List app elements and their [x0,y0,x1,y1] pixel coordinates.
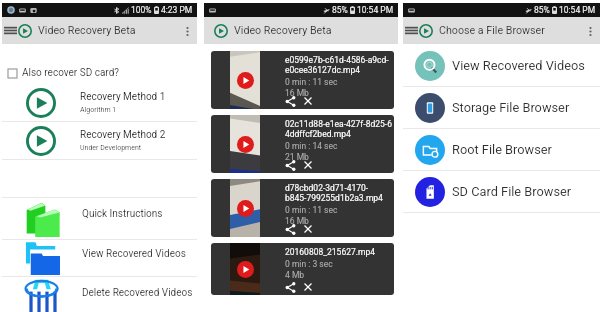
staticText: SD Card File Browser [452,184,572,199]
button[interactable]: Delete [302,95,314,107]
button[interactable]: Delete [302,223,314,235]
button[interactable]: Share [284,95,296,107]
staticText: Delete Recovered Videos [82,287,193,299]
staticText: Video Recovery Beta [234,24,332,37]
staticText: Also recover SD card? [22,67,120,79]
staticText: 4 Mb [285,270,305,280]
staticText: 0 min : 3 sec [285,259,333,269]
button[interactable]: View Recovered Videos [403,45,600,86]
button[interactable]: Quick Instructions [2,198,197,239]
staticText: Root File Browser [452,142,552,157]
staticText: 02c11d88-e1ea-427f-8d25-6 4ddffcf2bed.mp… [285,119,392,139]
button[interactable]: More options [582,23,598,39]
button[interactable]: Recovery Method 1 [2,84,197,121]
staticText: 100% [131,5,152,15]
button[interactable]: Recovery Method 2 [2,122,197,159]
staticText: 85% [332,5,348,15]
staticText: 0 min : 11 sec [285,77,338,87]
button[interactable]: e0599e7b-c61d-4586-a9cd- e0cee36127dc.mp… [211,51,394,109]
button[interactable]: View Recovered Videos [2,240,197,276]
staticText: 20160808_215627.mp4 [285,247,375,257]
staticText: 0 min : 11 sec [285,205,338,215]
staticText: View Recovered Videos [82,248,186,260]
staticText: 85% [534,5,550,15]
staticText: View Recovered Videos [452,58,585,73]
button[interactable]: Share [284,159,296,171]
staticText: 4:23 PM [161,5,193,15]
staticText: Storage File Browser [452,100,570,115]
button[interactable]: Open navigation menu [404,23,419,38]
staticText: 16 Mb [285,216,309,226]
button[interactable]: Storage File Browser [403,87,600,128]
button[interactable]: Also recover SD card? [2,66,197,80]
button[interactable]: Delete [302,281,314,293]
staticText: 0 min : 14 sec [285,141,338,151]
staticText: 10:54 PM [357,5,394,15]
button[interactable]: 20160808_215627.mp4 [211,243,394,295]
staticText: Video Recovery Beta [38,24,136,37]
button[interactable]: Share [284,223,296,235]
staticText: Quick Instructions [82,208,163,220]
staticText: 16 Mb [285,88,309,98]
button[interactable]: Delete Recovered Videos [2,277,197,312]
button[interactable]: More options [179,23,195,39]
staticText: d78cbd02-3d71-4170- b845-799255d1b2a3.mp… [285,183,383,203]
button[interactable]: Root File Browser [403,129,600,170]
button[interactable]: 02c11d88-e1ea-427f-8d25-6 4ddffcf2bed.mp… [211,115,394,173]
button[interactable]: d78cbd02-3d71-4170- b845-799255d1b2a3.mp… [211,179,394,237]
button[interactable]: Share [284,281,296,293]
staticText: e0599e7b-c61d-4586-a9cd- e0cee36127dc.mp… [285,55,389,75]
button[interactable]: Delete [302,159,314,171]
staticText: 10:54 PM [559,5,596,15]
button[interactable]: Open navigation menu [3,23,18,38]
staticText: Choose a File Browser [439,24,545,37]
staticText: Recovery Method 2 [80,129,166,141]
staticText: 21 Mb [285,152,309,162]
button[interactable]: SD Card File Browser [403,171,600,212]
staticText: Algorithm 1 [80,106,117,114]
staticText: Recovery Method 1 [80,91,166,103]
staticText: Under Development [80,144,142,152]
